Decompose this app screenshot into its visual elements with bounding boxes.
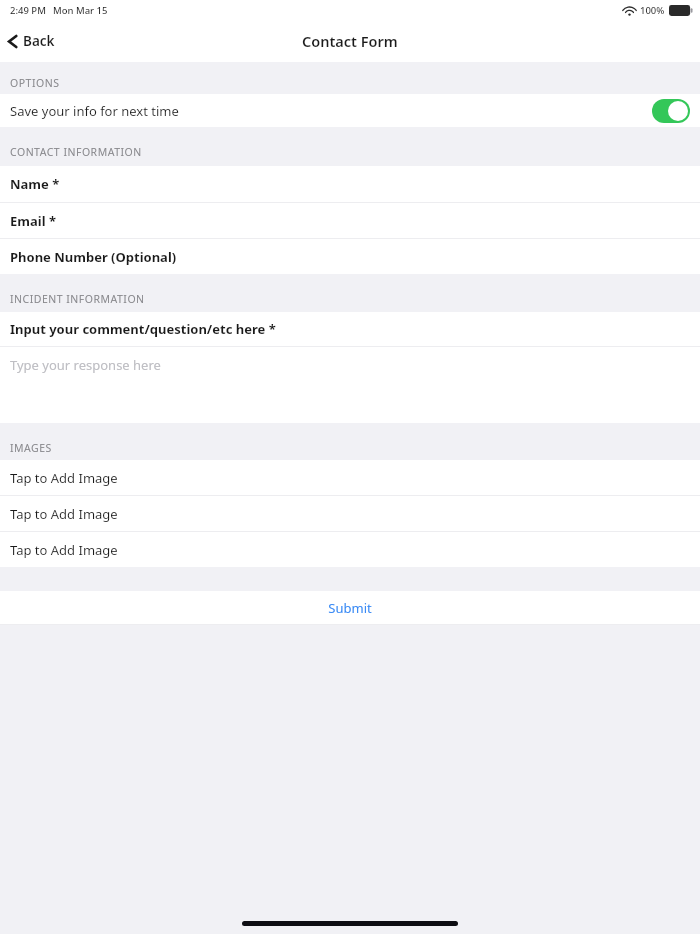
staticText: Save your info for next time	[10, 102, 179, 120]
staticText: Tap to Add Image	[10, 541, 118, 559]
button[interactable]: Email *	[0, 203, 700, 238]
staticText: Submit	[328, 599, 372, 617]
staticText: Tap to Add Image	[10, 505, 118, 523]
button[interactable]: Save your info for next time	[0, 94, 700, 127]
staticText: 2:49 PM	[10, 4, 46, 17]
button[interactable]: Name *	[0, 166, 700, 202]
staticText: 100%	[640, 4, 665, 17]
button[interactable]: Submit	[0, 591, 700, 624]
staticText: Contact Form	[302, 31, 398, 51]
staticText: CONTACT INFORMATION	[10, 145, 142, 159]
button[interactable]: Tap to Add Image	[0, 460, 700, 495]
staticText: INCIDENT INFORMATION	[10, 292, 145, 306]
button[interactable]: Tap to Add Image	[0, 532, 700, 567]
staticText: Name *	[10, 175, 60, 193]
button[interactable]: Type your response here	[0, 347, 700, 423]
staticText: Mon Mar 15	[53, 4, 108, 17]
staticText: Email *	[10, 212, 56, 230]
staticText: Input your comment/question/etc here *	[10, 320, 276, 338]
button[interactable]: Input your comment/question/etc here *	[0, 312, 700, 346]
button[interactable]: Tap to Add Image	[0, 496, 700, 531]
button[interactable]: Phone Number (Optional)	[0, 239, 700, 274]
staticText: OPTIONS	[10, 76, 60, 90]
button[interactable]: Save your info for next time toggle	[652, 99, 690, 123]
staticText: IMAGES	[10, 441, 52, 455]
staticText: Type your response here	[10, 356, 161, 374]
staticText: Tap to Add Image	[10, 469, 118, 487]
staticText: Phone Number (Optional)	[10, 248, 177, 266]
button[interactable]: Back	[0, 26, 65, 56]
staticText: Back	[23, 32, 55, 50]
